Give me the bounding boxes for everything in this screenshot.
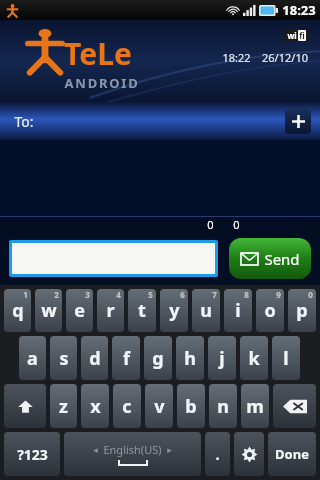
button[interactable]: b [177,384,205,428]
button[interactable]: 9 [256,289,284,332]
staticText: q [12,298,24,323]
button[interactable]: Settings [234,432,264,476]
staticText: 1 [23,289,28,300]
button[interactable]: c [113,384,141,428]
staticText: 0 [308,289,313,300]
staticText: ?123 [17,445,48,464]
staticText: n [217,394,229,419]
staticText: 2 [54,289,59,300]
button[interactable]: d [81,336,108,380]
button[interactable]: j [208,336,236,380]
button[interactable]: ?123 [4,432,60,476]
staticText: r [106,298,115,323]
staticText: l [283,346,289,371]
staticText: . [215,444,220,464]
staticText: f [123,346,130,371]
staticText: 18:22 [222,50,251,65]
button[interactable]: n [209,384,237,428]
staticText: s [59,346,69,371]
button[interactable]: To: [0,102,320,140]
staticText: x [90,394,101,419]
staticText: To: [14,112,34,131]
button[interactable]: 1 [4,289,31,332]
staticText: 6 [180,289,185,300]
staticText: m [246,394,264,419]
staticText: h [184,346,196,371]
button[interactable]: x [81,384,109,428]
staticText: 0 [207,217,214,231]
button[interactable]: Add recipient [285,108,311,134]
button[interactable]: 6 [160,289,188,332]
button[interactable]: a [19,336,46,380]
staticText: 3 [85,289,90,300]
button[interactable]: 4 [97,289,124,332]
staticText: a [27,346,38,371]
staticText: 8 [244,289,249,300]
button[interactable]: 2 [35,289,62,332]
button[interactable]: 8 [224,289,252,332]
staticText: b [185,394,197,419]
staticText: p [296,298,308,323]
button[interactable]: f [112,336,140,380]
button[interactable]: . [205,432,230,476]
button[interactable]: l [272,336,300,380]
staticText: o [264,298,276,323]
staticText: ANDROID [64,74,140,92]
staticText: ▸ [167,445,172,455]
staticText: fi [299,30,305,41]
button[interactable]: Send [229,238,311,279]
button[interactable]: h [176,336,204,380]
staticText: wi [287,30,297,41]
staticText: g [152,346,164,371]
staticText: Done [275,445,309,463]
staticText: e [74,298,85,323]
staticText: k [248,346,260,371]
button[interactable]: 7 [192,289,220,332]
staticText: 0 [233,217,240,231]
button[interactable]: g [144,336,172,380]
button[interactable]: Backspace [273,384,316,428]
staticText: y [169,298,180,323]
button[interactable]: 3 [66,289,93,332]
button[interactable]: s [50,336,77,380]
button[interactable]: v [145,384,173,428]
staticText: j [219,346,225,371]
staticText: i [235,298,241,323]
staticText: ◂ [93,445,98,455]
staticText: 18:23 [282,1,316,19]
staticText: 9 [276,289,281,300]
staticText: d [89,346,101,371]
staticText: 7 [212,289,217,300]
button[interactable]: m [241,384,269,428]
staticText: Send [264,249,300,269]
staticText: TeLe [64,33,132,74]
button[interactable]: k [240,336,268,380]
staticText: 4 [116,289,121,300]
staticText: t [138,298,146,323]
button[interactable]: 5 [128,289,156,332]
staticText: English(US) [103,442,162,457]
staticText: u [200,298,212,323]
button[interactable]: Space [64,432,201,476]
staticText: z [59,394,68,419]
staticText: c [122,394,132,419]
staticText: w [41,298,57,323]
staticText: 5 [148,289,153,300]
staticText: v [154,394,165,419]
staticText: 26/12/10 [262,50,308,65]
button[interactable]: z [50,384,77,428]
button[interactable]: Shift [4,384,46,428]
button[interactable]: 0 [288,289,316,332]
button[interactable]: Done [268,432,316,476]
